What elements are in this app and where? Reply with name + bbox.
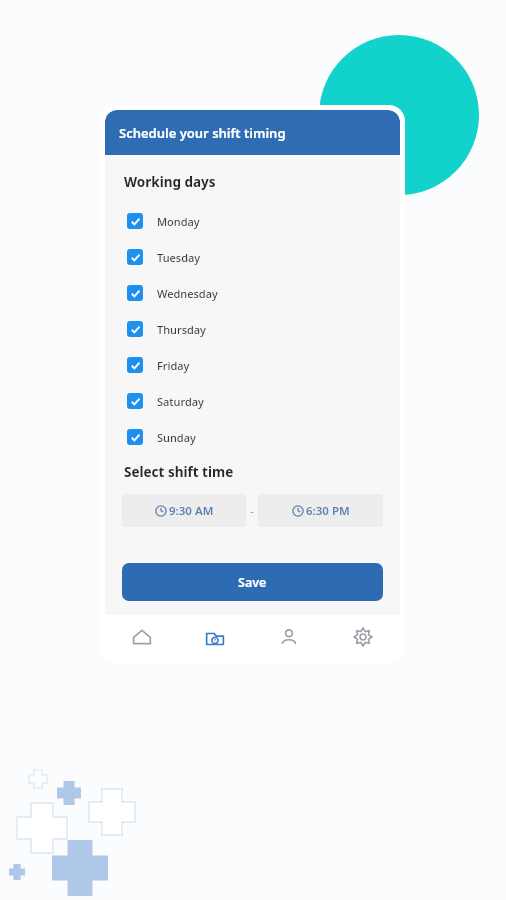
staticText: Sunday xyxy=(157,430,196,445)
staticText: Save xyxy=(238,574,267,591)
button[interactable]: Tuesday xyxy=(105,239,400,275)
staticText: Schedule your shift timing xyxy=(119,124,286,142)
staticText: Saturday xyxy=(157,394,204,409)
button[interactable]: Settings xyxy=(326,615,400,658)
button[interactable]: Saturday xyxy=(105,383,400,419)
button[interactable]: Sunday xyxy=(105,419,400,455)
staticText: 9:30 AM xyxy=(169,503,214,519)
staticText: Friday xyxy=(157,358,190,373)
button[interactable]: Shifts xyxy=(178,615,252,658)
staticText: Tuesday xyxy=(157,250,201,265)
button[interactable]: Thursday xyxy=(105,311,400,347)
button[interactable]: 6:30 PM xyxy=(258,494,383,527)
button[interactable]: Monday xyxy=(105,203,400,239)
button[interactable]: Profile xyxy=(252,615,326,658)
staticText: Working days xyxy=(124,173,216,191)
button[interactable]: Friday xyxy=(105,347,400,383)
button[interactable]: Wednesday xyxy=(105,275,400,311)
staticText: - xyxy=(250,503,254,518)
staticText: 6:30 PM xyxy=(306,503,350,519)
button[interactable]: Schedule your shift timing xyxy=(105,110,400,155)
button[interactable]: Home xyxy=(105,615,178,658)
staticText: Monday xyxy=(157,214,200,229)
staticText: Thursday xyxy=(157,322,206,337)
button[interactable]: Save xyxy=(122,563,383,601)
staticText: Wednesday xyxy=(157,286,218,301)
button[interactable]: 9:30 AM xyxy=(122,494,246,527)
staticText: Select shift time xyxy=(124,463,234,481)
